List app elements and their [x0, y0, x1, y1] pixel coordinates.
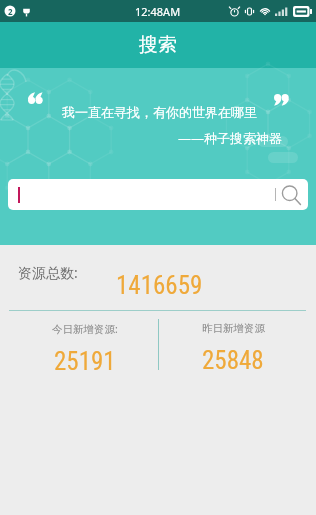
button[interactable]: Search field: [8, 179, 308, 210]
staticText: 资源总数:: [18, 263, 78, 282]
staticText: 2: [8, 6, 13, 17]
button[interactable]: 资源总数:: [0, 245, 316, 307]
button[interactable]: 搜索: [119, 27, 197, 63]
staticText: 昨日新增资源: [202, 322, 265, 335]
staticText: 1416659: [116, 271, 203, 300]
staticText: 我一直在寻找，有你的世界在哪里: [62, 104, 257, 120]
staticText: 今日新增资源:: [52, 322, 118, 336]
button[interactable]: Search: [280, 184, 302, 206]
staticText: 25848: [202, 346, 264, 375]
staticText: 搜索: [139, 33, 177, 57]
button[interactable]: 昨日新增资源: [154, 322, 312, 375]
button[interactable]: 今日新增资源:: [6, 322, 164, 376]
staticText: ——种子搜索神器: [178, 129, 283, 147]
staticText: 25191: [54, 347, 116, 376]
staticText: 12:48AM: [135, 4, 181, 19]
